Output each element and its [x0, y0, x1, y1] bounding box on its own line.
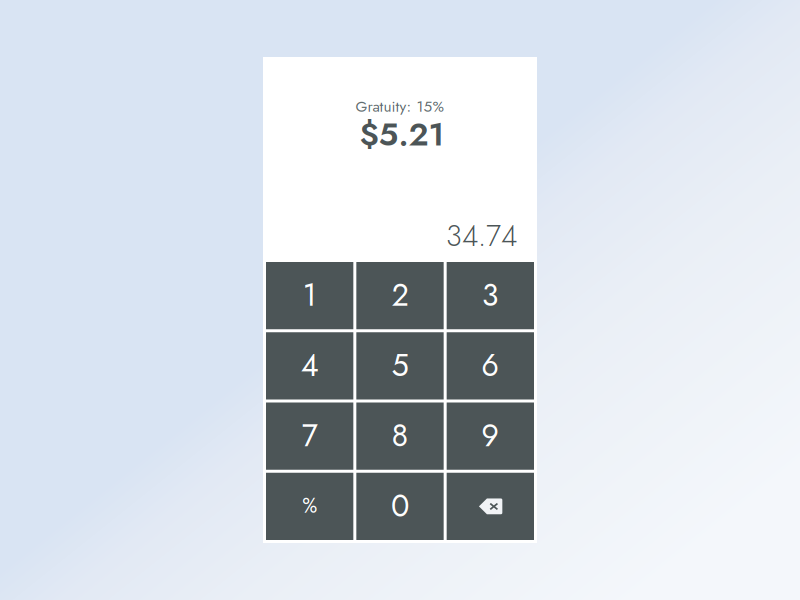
staticText: 7	[302, 413, 318, 458]
staticText: 34.74	[446, 215, 517, 257]
button[interactable]: 9	[447, 402, 534, 470]
button[interactable]: 7	[266, 402, 353, 470]
button[interactable]: Delete	[447, 473, 534, 540]
button[interactable]: 5	[356, 332, 444, 399]
staticText: 5	[391, 343, 408, 387]
button[interactable]: 0	[356, 473, 444, 540]
button[interactable]: 2	[356, 262, 444, 329]
staticText: 4	[301, 343, 319, 387]
button[interactable]: %	[266, 473, 353, 540]
button[interactable]: 3	[447, 262, 534, 329]
staticText: 1	[303, 273, 317, 317]
staticText: %	[302, 491, 317, 520]
staticText: 3	[482, 273, 499, 317]
staticText: 9	[481, 413, 499, 458]
button[interactable]: 4	[266, 332, 353, 399]
button[interactable]: 8	[356, 402, 444, 470]
staticText: 0	[391, 484, 409, 528]
staticText: 8	[391, 413, 408, 458]
staticText: Gratuity: 15%	[355, 95, 444, 118]
staticText: $5.21	[359, 111, 444, 158]
button[interactable]: 1	[266, 262, 353, 329]
staticText: 6	[481, 343, 499, 387]
button[interactable]: 6	[447, 332, 534, 399]
staticText: 2	[391, 273, 408, 317]
